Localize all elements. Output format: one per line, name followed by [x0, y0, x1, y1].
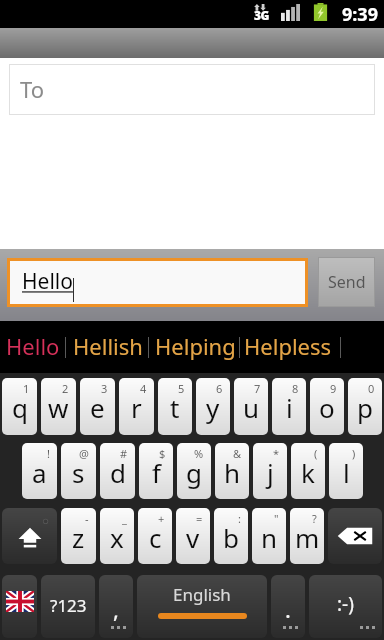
staticText: -	[85, 511, 89, 526]
staticText: y	[206, 390, 220, 425]
staticText: b	[223, 520, 239, 555]
staticText: Helpless	[244, 331, 332, 361]
staticText: Helping	[155, 331, 236, 361]
staticText: a	[32, 455, 47, 490]
staticText: v	[186, 520, 200, 555]
button[interactable]: _	[100, 508, 134, 564]
staticText: *	[273, 446, 280, 461]
staticText: %	[194, 446, 204, 461]
staticText: 4	[140, 381, 147, 396]
staticText: d	[110, 455, 126, 490]
staticText: +	[158, 511, 165, 526]
staticText: Send	[328, 271, 366, 293]
staticText: Hello	[6, 331, 60, 361]
button[interactable]: -	[61, 508, 96, 564]
staticText: ?	[312, 511, 317, 526]
button[interactable]: 3	[80, 378, 115, 435]
staticText: _	[122, 511, 127, 526]
button[interactable]: 6	[196, 378, 230, 435]
button[interactable]: =	[176, 508, 210, 564]
staticText: .	[285, 594, 291, 624]
staticText: n	[261, 520, 278, 555]
button[interactable]: 8	[272, 378, 306, 435]
button[interactable]: %	[177, 443, 211, 499]
staticText: 2	[62, 381, 69, 396]
button[interactable]: Hello	[6, 321, 60, 373]
staticText: x	[110, 520, 124, 555]
button[interactable]: 7	[234, 378, 268, 435]
button[interactable]: Delete	[328, 508, 382, 564]
button[interactable]: Send	[318, 257, 375, 307]
button[interactable]: Change language	[2, 575, 37, 638]
staticText: :	[238, 511, 241, 526]
button[interactable]: Space	[137, 575, 267, 638]
button[interactable]: Helping	[155, 321, 236, 373]
staticText: English	[173, 583, 231, 606]
staticText: 3G	[254, 7, 269, 23]
staticText: c	[149, 520, 162, 555]
staticText: Hellish	[73, 331, 143, 361]
button[interactable]: 2	[41, 378, 76, 435]
button[interactable]: .	[271, 575, 305, 638]
staticText: To	[20, 74, 45, 104]
staticText: 5	[178, 381, 185, 396]
button[interactable]: $	[139, 443, 173, 499]
staticText: 1	[23, 381, 30, 396]
staticText: z	[72, 520, 85, 555]
button[interactable]: (	[291, 443, 325, 499]
button[interactable]: ?123	[41, 575, 95, 638]
staticText: 7	[254, 381, 261, 396]
staticText: $	[159, 446, 166, 461]
button[interactable]: ?	[290, 508, 324, 564]
button[interactable]: :-)	[309, 575, 382, 638]
staticText: u	[243, 390, 260, 425]
button[interactable]: &	[215, 443, 249, 499]
button[interactable]: ,	[99, 575, 133, 638]
button[interactable]: Helpless	[244, 321, 332, 373]
staticText: o	[319, 390, 335, 425]
staticText: 0	[368, 381, 375, 396]
staticText: k	[301, 455, 315, 490]
button[interactable]: Shift	[2, 508, 57, 564]
staticText: 9:39	[342, 2, 378, 27]
button[interactable]: 1	[2, 378, 37, 435]
staticText: g	[186, 455, 202, 490]
button[interactable]: @	[61, 443, 96, 499]
button[interactable]: 9	[310, 378, 344, 435]
staticText: l	[343, 455, 350, 490]
button[interactable]: :	[214, 508, 248, 564]
button[interactable]: *	[253, 443, 287, 499]
button[interactable]: 4	[119, 378, 154, 435]
staticText: r	[131, 390, 142, 425]
button[interactable]: #	[100, 443, 135, 499]
staticText: (	[314, 446, 318, 461]
button[interactable]: +	[138, 508, 172, 564]
button[interactable]: )	[329, 443, 363, 499]
button[interactable]: "	[252, 508, 286, 564]
staticText: e	[90, 390, 105, 425]
staticText: 9	[330, 381, 337, 396]
staticText: "	[274, 511, 279, 526]
staticText: 6	[216, 381, 223, 396]
staticText: t	[170, 390, 180, 425]
staticText: !	[47, 446, 50, 461]
staticText: 8	[292, 381, 299, 396]
staticText: ,	[113, 594, 119, 624]
staticText: p	[357, 390, 373, 425]
button[interactable]: Hellish	[73, 321, 143, 373]
button[interactable]: To	[9, 64, 375, 115]
staticText: h	[224, 455, 241, 490]
staticText: m	[295, 520, 320, 555]
staticText: )	[352, 446, 356, 461]
staticText: f	[152, 455, 161, 490]
staticText: s	[72, 455, 85, 490]
staticText: i	[286, 390, 293, 425]
staticText: j	[267, 455, 274, 490]
staticText: @	[79, 446, 89, 461]
button[interactable]: Hello	[10, 261, 305, 304]
staticText: &	[233, 446, 242, 461]
button[interactable]: 0	[348, 378, 382, 435]
staticText: =	[196, 511, 203, 526]
button[interactable]: 5	[158, 378, 192, 435]
button[interactable]: !	[22, 443, 57, 499]
